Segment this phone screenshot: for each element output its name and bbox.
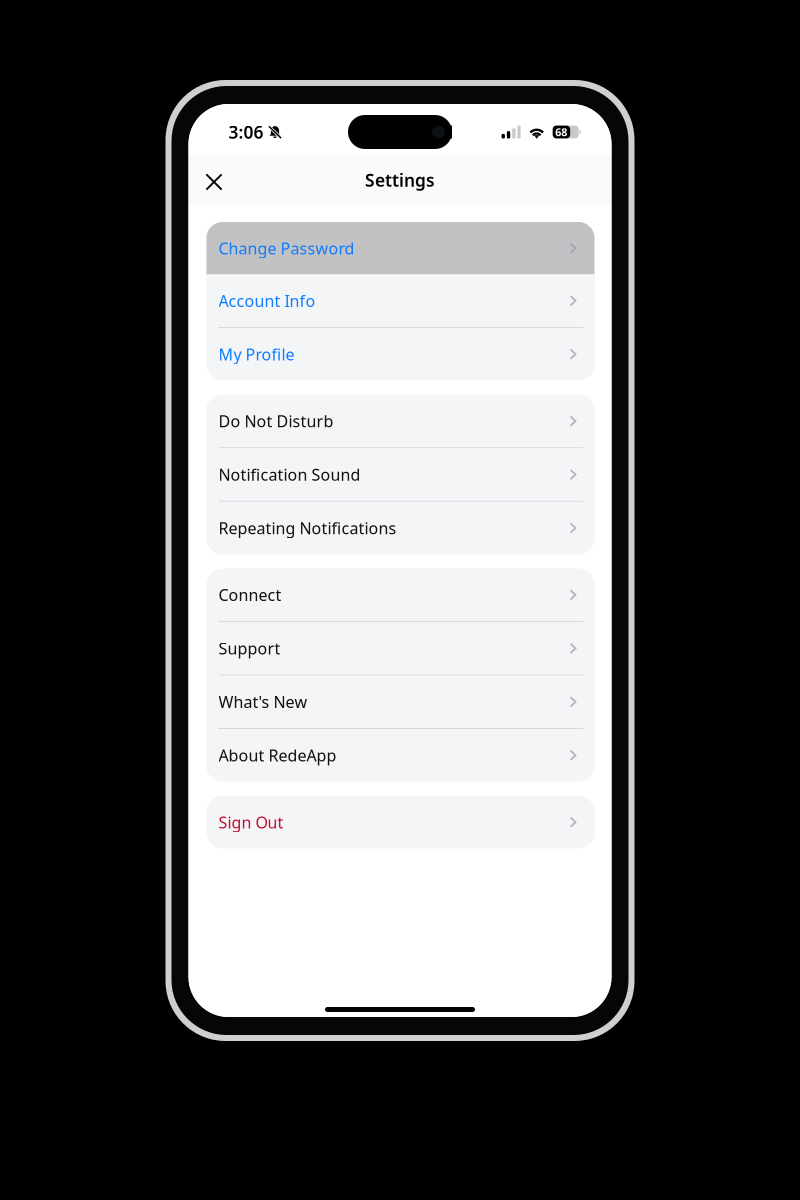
staticText: Repeating Notifications [218, 517, 396, 539]
staticText: Settings [365, 168, 435, 191]
button[interactable]: Account Info [206, 274, 594, 327]
button[interactable]: Connect [206, 569, 594, 621]
staticText: Sign Out [218, 812, 283, 833]
button[interactable]: Close [188, 157, 236, 202]
button[interactable]: Sign Out [206, 796, 594, 848]
staticText: Do Not Disturb [218, 410, 333, 432]
staticText: My Profile [218, 344, 294, 365]
staticText: About RedeApp [218, 745, 336, 766]
staticText: 68 [555, 125, 567, 139]
staticText: Notification Sound [218, 464, 360, 485]
button[interactable]: What's New [206, 676, 594, 728]
staticText: Connect [218, 584, 281, 605]
staticText: What's New [218, 691, 307, 712]
button[interactable]: Do Not Disturb [206, 395, 594, 447]
button[interactable]: Support [206, 622, 594, 675]
staticText: Change Password [218, 238, 354, 259]
button[interactable]: Notification Sound [206, 448, 594, 501]
staticText: Support [218, 638, 280, 659]
button[interactable]: About RedeApp [206, 729, 594, 782]
button[interactable]: My Profile [206, 328, 594, 380]
staticText: 3:06 [228, 120, 263, 143]
staticText: Account Info [218, 290, 315, 311]
button[interactable]: Repeating Notifications [206, 502, 594, 554]
button[interactable]: Change Password [206, 222, 594, 274]
